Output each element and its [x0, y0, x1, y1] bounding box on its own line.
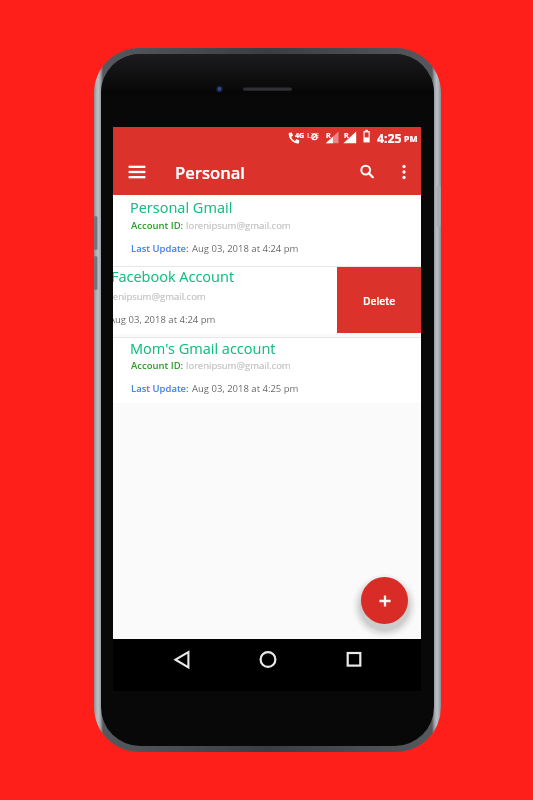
- button[interactable]: Add account: [361, 577, 408, 624]
- staticText: Mom's Gmail account: [130, 339, 276, 359]
- staticText: lorenipsum@gmail.com: [113, 290, 206, 303]
- button[interactable]: Open navigation menu: [127, 161, 147, 183]
- staticText: Delete: [363, 294, 396, 308]
- staticText: Last Update:: [131, 242, 192, 255]
- staticText: Personal Gmail: [130, 198, 233, 218]
- staticText: R: [344, 130, 349, 140]
- button[interactable]: Back: [163, 639, 201, 691]
- staticText: lorenipsum@gmail.com: [186, 359, 291, 372]
- button[interactable]: Search: [353, 158, 381, 186]
- staticText: 4G: [295, 130, 305, 140]
- button[interactable]: Delete: [337, 267, 421, 333]
- button[interactable]: Recent apps: [335, 639, 373, 691]
- staticText: lorenipsum@gmail.com: [186, 219, 291, 232]
- staticText: LTE: [307, 130, 320, 140]
- button[interactable]: More options: [390, 158, 418, 186]
- button[interactable]: [113, 338, 421, 403]
- staticText: 4:25: [377, 130, 402, 147]
- staticText: Aug 03, 2018 at 4:24 pm: [192, 242, 299, 255]
- button[interactable]: Home: [249, 639, 287, 691]
- staticText: Account ID:: [131, 219, 186, 232]
- staticText: Last Update:: [131, 382, 192, 395]
- staticText: PM: [404, 133, 418, 145]
- staticText: Aug 03, 2018 at 4:24 pm: [113, 313, 216, 326]
- staticText: R: [326, 130, 331, 140]
- staticText: Facebook Account: [113, 267, 235, 287]
- staticText: Personal: [175, 161, 245, 184]
- button[interactable]: [113, 267, 337, 334]
- button[interactable]: [113, 195, 421, 266]
- staticText: Aug 03, 2018 at 4:25 pm: [192, 382, 299, 395]
- staticText: Account ID:: [131, 359, 186, 372]
